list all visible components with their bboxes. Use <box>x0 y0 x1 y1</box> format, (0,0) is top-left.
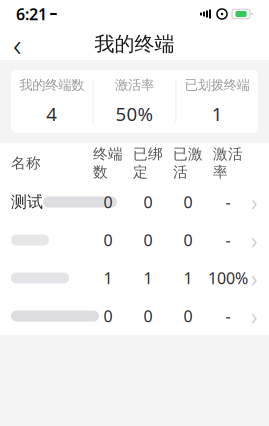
staticText: 100% <box>208 267 248 289</box>
staticText: 0 <box>103 305 112 327</box>
button[interactable]: 测试 <box>0 183 269 221</box>
staticText: 50% <box>115 101 153 126</box>
staticText: 6:21 <box>16 3 47 25</box>
staticText: 我的终端数 <box>19 77 84 93</box>
staticText: - <box>225 305 230 327</box>
staticText: 我的终端 <box>94 32 174 56</box>
staticText: 0 <box>103 229 112 251</box>
staticText: 测试 <box>11 192 43 212</box>
staticText: 1 <box>212 101 223 126</box>
staticText: - <box>225 191 230 213</box>
staticText: 0 <box>183 191 192 213</box>
staticText: 名称 <box>11 154 41 172</box>
staticText: › <box>251 262 257 294</box>
button[interactable]: 0 <box>0 297 269 335</box>
staticText: 4 <box>46 101 57 126</box>
staticText: › <box>251 186 257 218</box>
staticText: 1 <box>183 267 192 289</box>
staticText: 0 <box>143 305 152 327</box>
button[interactable]: Back <box>0 29 34 59</box>
staticText: 已激活 <box>173 145 203 181</box>
staticText: 0 <box>183 305 192 327</box>
staticText: 1 <box>143 267 152 289</box>
staticText: 0 <box>103 191 112 213</box>
button[interactable]: 0 <box>0 221 269 259</box>
staticText: - <box>225 229 230 251</box>
staticText: 激活率 <box>213 145 243 181</box>
staticText: 0 <box>183 229 192 251</box>
staticText: › <box>251 224 257 256</box>
staticText: 已划拨终端 <box>185 77 250 93</box>
staticText: 1 <box>103 267 112 289</box>
staticText: 已绑定 <box>133 145 163 181</box>
staticText: ‹ <box>13 23 21 65</box>
staticText: › <box>251 300 257 332</box>
button[interactable]: 1 <box>0 259 269 297</box>
staticText: 0 <box>143 229 152 251</box>
staticText: 终端数 <box>93 145 123 181</box>
staticText: 激活率 <box>115 77 154 93</box>
staticText: 0 <box>143 191 152 213</box>
